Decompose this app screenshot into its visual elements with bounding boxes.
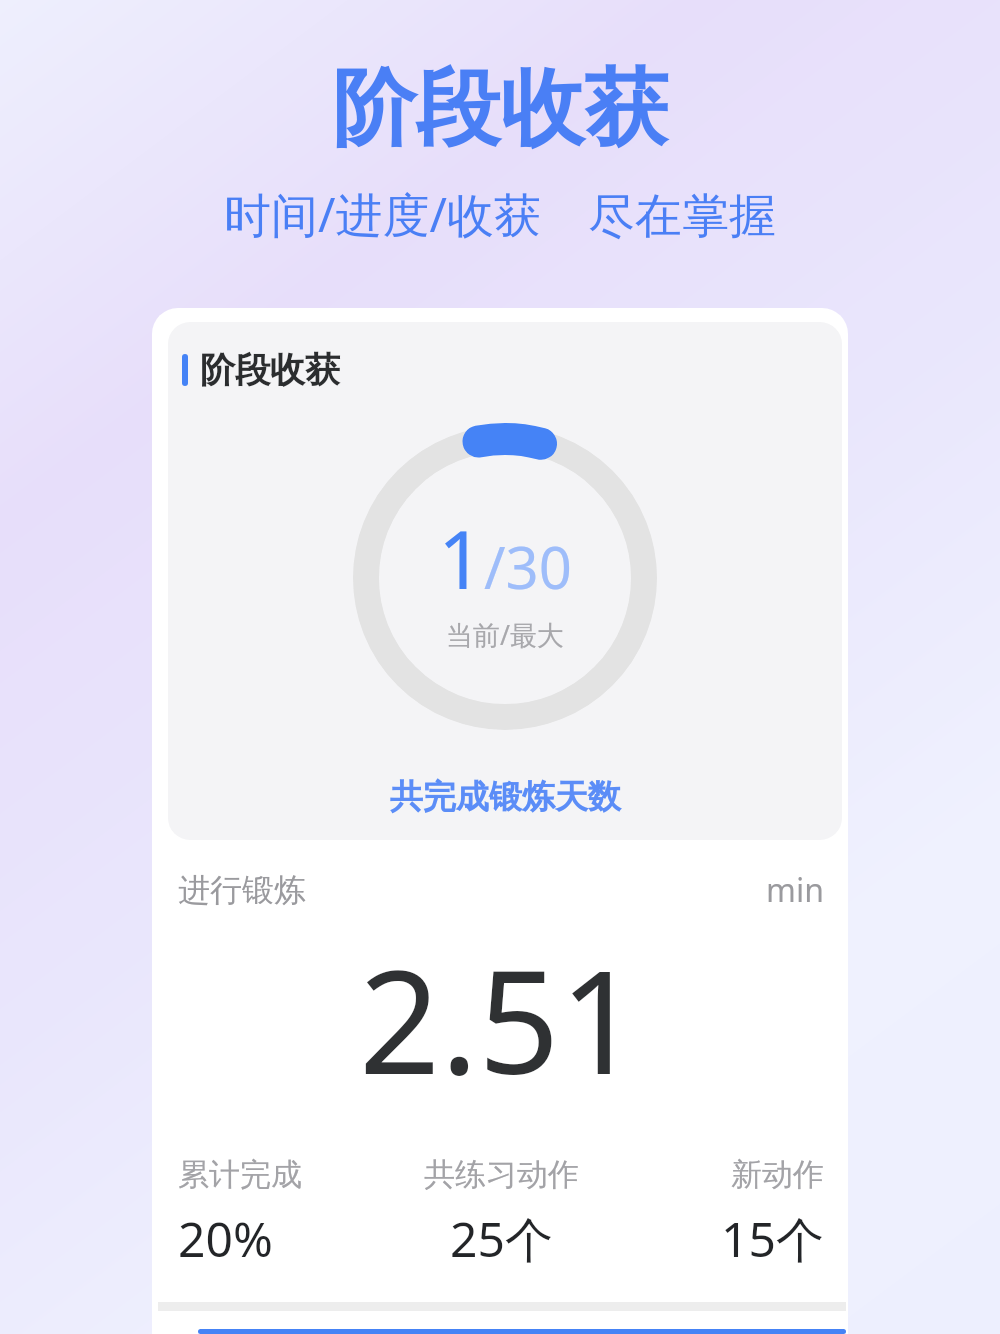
staticText: 15个 (721, 1206, 824, 1272)
button[interactable]: 累计完成 (178, 1155, 394, 1271)
staticText: min (766, 868, 824, 912)
staticText: 2.51 (359, 922, 641, 1115)
staticText: 时间/进度/收获 尽在掌握 (224, 182, 776, 246)
button[interactable]: 新动作 (609, 1155, 824, 1272)
button[interactable]: 共练习动作 (394, 1155, 609, 1272)
staticText: 阶段收获 (200, 348, 340, 392)
staticText: 共完成锻炼天数 (390, 776, 621, 818)
staticText: 阶段收获 (332, 56, 668, 162)
button[interactable]: 继续锻炼 (198, 1329, 846, 1334)
staticText: 共练习动作 (424, 1155, 579, 1194)
staticText: 1 (438, 503, 484, 612)
staticText: 25个 (450, 1206, 553, 1272)
staticText: 20% (178, 1206, 273, 1271)
staticText: /30 (484, 527, 572, 606)
staticText: 当前/最大 (446, 616, 565, 653)
staticText: 累计完成 (178, 1155, 302, 1194)
staticText: 进行锻炼 (178, 870, 306, 910)
staticText: 新动作 (731, 1155, 824, 1194)
